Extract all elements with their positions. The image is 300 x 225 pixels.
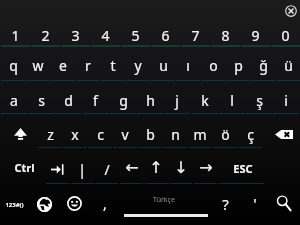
button[interactable]: [100, 47, 125, 81]
button[interactable]: [163, 115, 188, 149]
staticText: ş: [256, 91, 263, 110]
button[interactable]: [245, 81, 272, 115]
button[interactable]: [191, 81, 218, 115]
button[interactable]: [164, 81, 191, 115]
button[interactable]: Right: [193, 149, 218, 183]
staticText: 4: [101, 26, 110, 45]
button[interactable]: [63, 115, 88, 149]
button[interactable]: [138, 115, 163, 149]
staticText: a: [10, 91, 18, 110]
button[interactable]: [60, 13, 90, 47]
staticText: 3: [71, 26, 80, 45]
staticText: ğ: [259, 56, 268, 75]
staticText: u: [159, 56, 168, 75]
button[interactable]: [120, 13, 150, 47]
staticText: d: [64, 91, 73, 110]
staticText: 8: [221, 26, 230, 45]
button[interactable]: [75, 47, 100, 81]
button[interactable]: [238, 183, 268, 217]
staticText: 2: [41, 26, 50, 45]
staticText: k: [201, 91, 209, 110]
button[interactable]: [200, 47, 225, 81]
button[interactable]: Space: [119, 183, 211, 217]
button[interactable]: [30, 13, 60, 47]
button[interactable]: [38, 115, 63, 149]
button[interactable]: [82, 81, 109, 115]
staticText: n: [171, 125, 180, 144]
button[interactable]: [218, 81, 245, 115]
button[interactable]: [175, 47, 200, 81]
button[interactable]: [180, 13, 210, 47]
staticText: |: [78, 160, 86, 179]
button[interactable]: [109, 81, 136, 115]
button[interactable]: Close: [280, 0, 300, 22]
button[interactable]: [240, 13, 270, 47]
button[interactable]: [88, 115, 113, 149]
staticText: →: [199, 158, 213, 177]
button[interactable]: [213, 115, 238, 149]
staticText: 5: [131, 26, 140, 45]
button[interactable]: Backspace: [263, 115, 300, 149]
button[interactable]: [50, 47, 75, 81]
staticText: ç: [247, 125, 254, 144]
staticText: 6: [161, 26, 170, 45]
button[interactable]: Change language: [29, 183, 59, 217]
button[interactable]: [55, 81, 82, 115]
button[interactable]: [70, 149, 95, 183]
button[interactable]: [238, 115, 263, 149]
staticText: ESC: [233, 161, 253, 176]
staticText: ı: [186, 56, 190, 75]
button[interactable]: [95, 149, 120, 183]
button[interactable]: [90, 13, 120, 47]
staticText: s: [38, 91, 45, 110]
button[interactable]: [136, 81, 163, 115]
staticText: b: [146, 125, 155, 144]
button[interactable]: [250, 47, 275, 81]
button[interactable]: [113, 115, 138, 149]
button[interactable]: [218, 149, 264, 183]
staticText: Ctrl: [14, 160, 35, 175]
button[interactable]: [210, 13, 240, 47]
button[interactable]: [89, 183, 119, 217]
button[interactable]: Tab: [45, 149, 70, 183]
button[interactable]: [273, 81, 300, 115]
staticText: ,: [103, 194, 107, 213]
button[interactable]: [0, 47, 25, 81]
button[interactable]: [0, 81, 27, 115]
staticText: q: [9, 56, 18, 75]
button[interactable]: Search: [268, 183, 300, 217]
button[interactable]: Up: [144, 149, 169, 183]
staticText: z: [47, 125, 54, 144]
staticText: Türkçe: [153, 195, 175, 205]
button[interactable]: [0, 149, 45, 183]
button[interactable]: Down: [169, 149, 194, 183]
button[interactable]: [0, 13, 30, 47]
button[interactable]: Symbols: [0, 183, 29, 217]
staticText: f: [93, 91, 98, 110]
staticText: v: [121, 125, 129, 144]
staticText: ?: [222, 194, 229, 214]
button[interactable]: [275, 47, 300, 81]
staticText: o: [209, 56, 218, 75]
button[interactable]: [27, 81, 54, 115]
staticText: 0: [281, 26, 290, 45]
button[interactable]: [25, 47, 50, 81]
staticText: 123#(): [5, 201, 24, 209]
button[interactable]: Shift: [0, 115, 38, 149]
button[interactable]: Emoji: [59, 183, 89, 217]
staticText: g: [119, 91, 128, 110]
staticText: ö: [221, 125, 230, 144]
button[interactable]: [211, 183, 238, 217]
button[interactable]: [150, 13, 180, 47]
button[interactable]: [150, 47, 175, 81]
button[interactable]: [225, 47, 250, 81]
staticText: i: [284, 91, 288, 110]
staticText: j: [175, 91, 179, 110]
button[interactable]: [188, 115, 213, 149]
button[interactable]: [125, 47, 150, 81]
button[interactable]: [270, 13, 300, 47]
staticText: t: [110, 56, 116, 75]
button[interactable]: Left: [119, 149, 144, 183]
staticText: h: [146, 91, 155, 110]
